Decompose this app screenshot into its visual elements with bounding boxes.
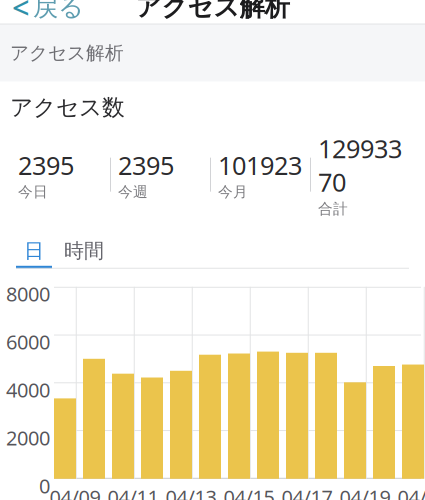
staticText: アクセス解析 [10, 42, 124, 65]
staticText: アクセス解析 [135, 0, 289, 23]
staticText: 101923 [218, 148, 302, 182]
staticText: 6000 [6, 328, 50, 355]
staticText: 0 [39, 472, 50, 499]
staticText: 日 [24, 238, 44, 263]
staticText: 04/21 [397, 484, 425, 500]
staticText: 今週 [118, 183, 148, 201]
staticText: 4000 [6, 376, 50, 403]
staticText: 今月 [218, 183, 248, 201]
staticText: 2000 [6, 424, 50, 451]
staticText: 04/15 [223, 484, 274, 500]
button[interactable]: 時間 [52, 236, 106, 269]
staticText: 12993370 [318, 131, 402, 199]
staticText: 8000 [6, 280, 50, 307]
staticText: 時間 [64, 238, 104, 263]
staticText: 04/09 [49, 484, 100, 500]
staticText: 2395 [18, 148, 74, 182]
staticText: 合計 [318, 200, 348, 218]
staticText: < [12, 0, 30, 28]
staticText: 04/19 [339, 484, 390, 500]
button[interactable]: 日 [0, 236, 52, 269]
staticText: 04/17 [281, 484, 332, 500]
staticText: アクセス数 [10, 94, 125, 121]
staticText: 今日 [18, 183, 48, 201]
staticText: 04/11 [107, 484, 158, 500]
staticText: 戻る [33, 0, 84, 23]
button[interactable]: < [0, 0, 96, 25]
staticText: 04/13 [165, 484, 216, 500]
staticText: 2395 [118, 148, 174, 182]
